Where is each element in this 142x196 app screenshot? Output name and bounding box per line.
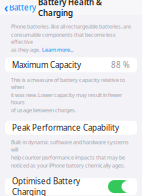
staticText: Phone batteries, like all rechargeable b…	[11, 23, 131, 30]
staticText: This is a measure of battery capacity re…	[11, 76, 125, 90]
staticText: consumable components that become less e…	[11, 31, 116, 45]
staticText: it was new. Lower capacity may result in…	[11, 91, 122, 106]
staticText: Learn more...	[42, 46, 73, 53]
button[interactable]: Optimised Battery Charging	[5, 178, 137, 195]
staticText: as they age.	[11, 46, 40, 53]
staticText: of usage between charges.	[11, 107, 76, 114]
staticText: ‹	[4, 0, 8, 15]
staticText: Maximum Capacity	[12, 59, 81, 70]
staticText: noticed as your iPhone battery chemicall…	[11, 162, 125, 169]
button[interactable]: Learn more...	[42, 46, 73, 53]
staticText: Peak Performance Capability	[12, 122, 119, 133]
button[interactable]: ‹	[4, 0, 36, 15]
staticText: 88 %	[111, 59, 130, 70]
staticText: Optimised Battery Charging	[12, 176, 80, 196]
button[interactable]: Peak Performance Capability	[5, 121, 137, 135]
button[interactable]: Maximum Capacity	[5, 57, 137, 72]
staticText: Battery Health & Charging	[38, 0, 102, 18]
staticText: Battery	[9, 2, 36, 13]
staticText: help counter performance impacts that ma…	[11, 154, 125, 161]
staticText: Built-in dynamic software and hardware s…	[11, 139, 129, 153]
